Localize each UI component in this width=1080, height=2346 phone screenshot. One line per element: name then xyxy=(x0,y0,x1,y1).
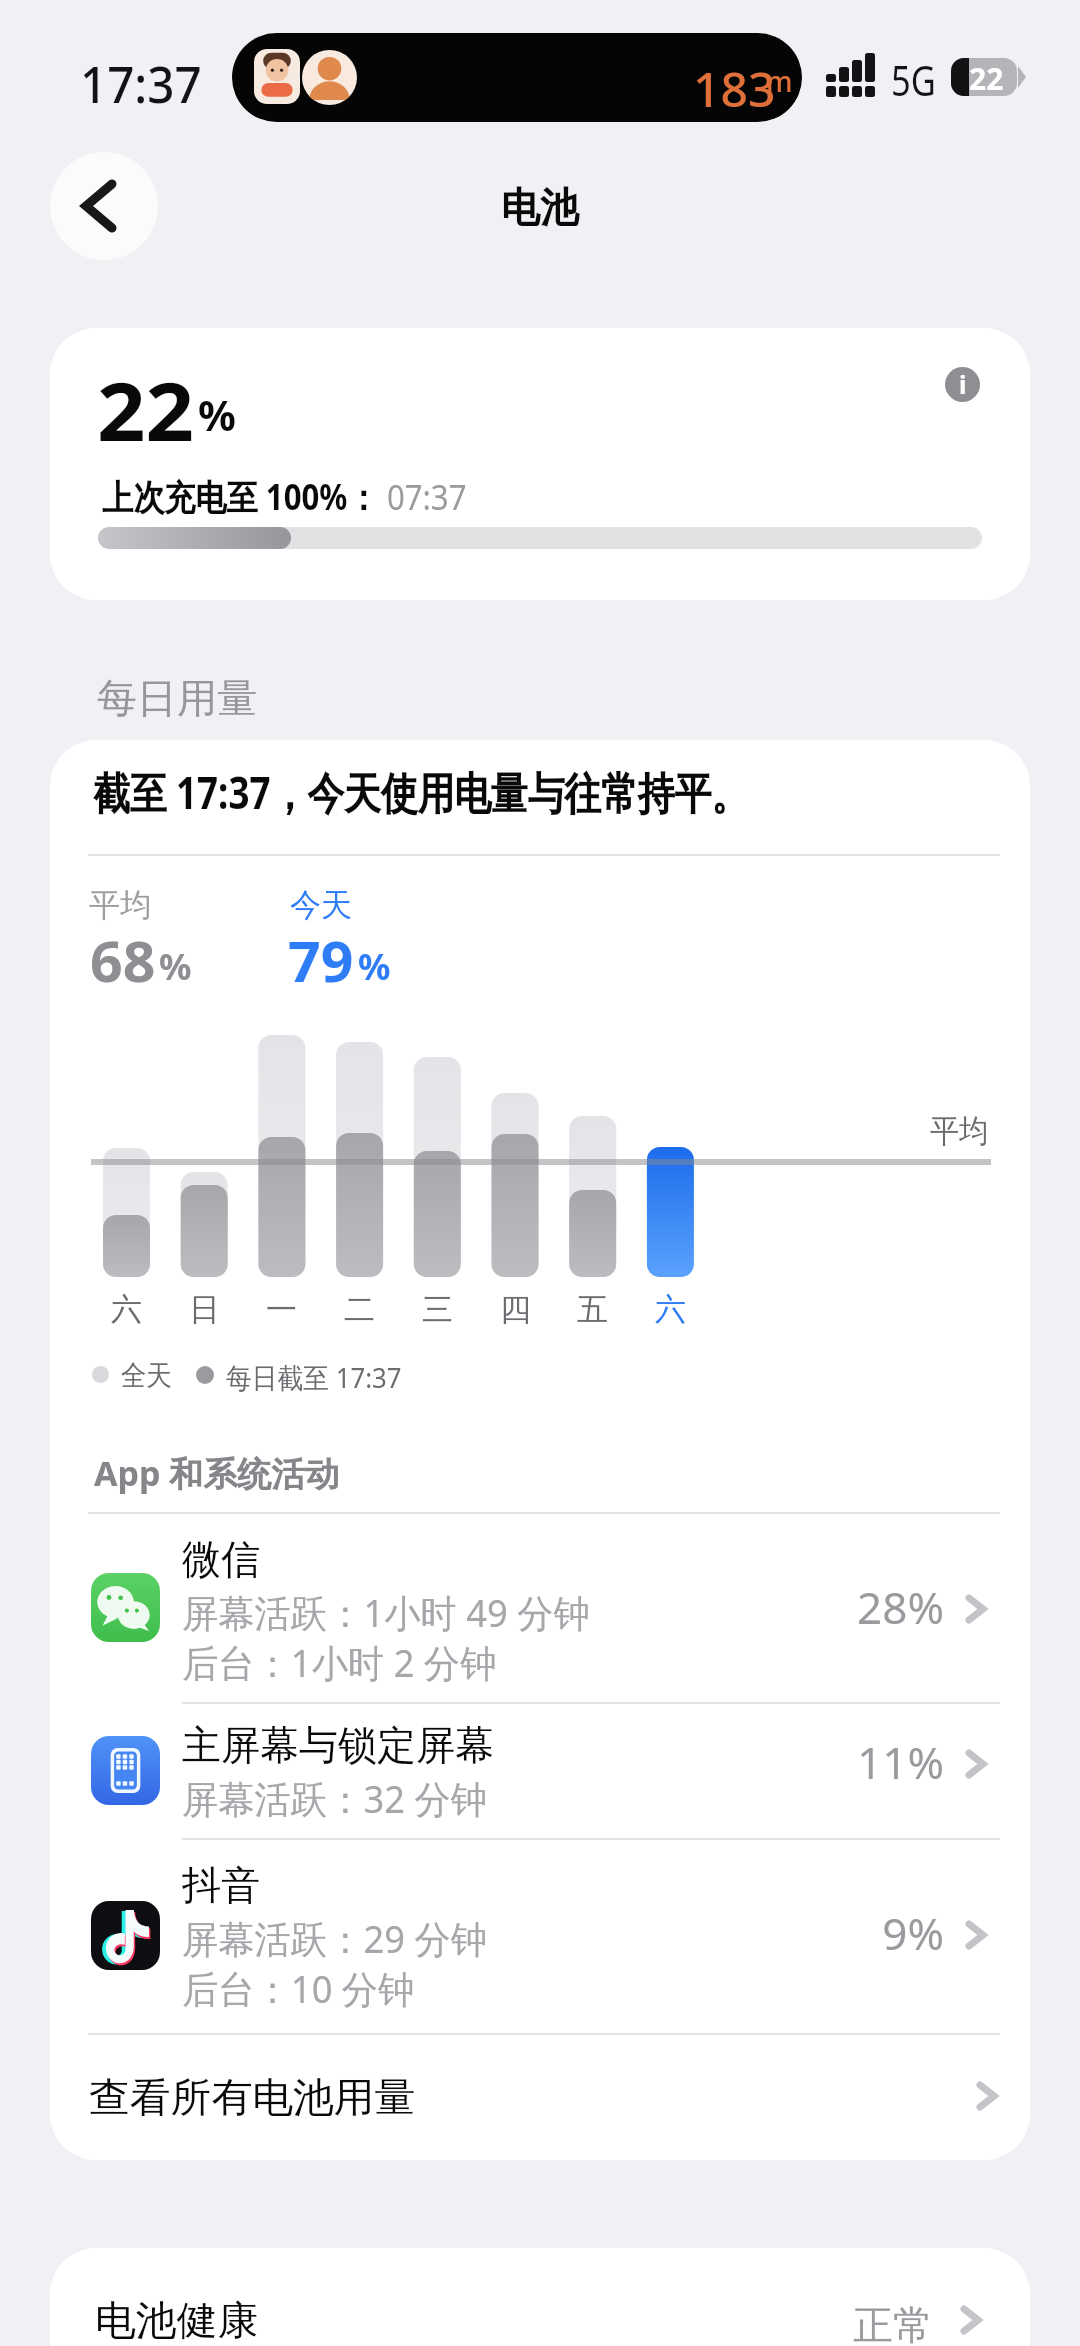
staticText: 日 xyxy=(189,1290,220,1329)
staticText: 查看所有电池用量 xyxy=(89,2072,415,2122)
staticText: 平均 xyxy=(930,1111,988,1151)
staticText: 28% xyxy=(812,1577,944,1637)
staticText: 电池健康 xyxy=(95,2295,258,2345)
staticText: 三 xyxy=(422,1290,453,1329)
staticText: 抖音 xyxy=(182,1860,260,1910)
staticText: 上次充电至 100%： xyxy=(102,473,379,521)
staticText: 屏幕活跃：32 分钟 xyxy=(182,1772,488,1824)
button[interactable]: 微信 xyxy=(50,1512,1030,1702)
staticText: 四 xyxy=(500,1290,531,1329)
staticText: 二 xyxy=(344,1290,375,1329)
staticText: 微信 xyxy=(182,1534,260,1584)
staticText: 六 xyxy=(111,1290,142,1329)
button[interactable]: Back xyxy=(50,152,158,260)
staticText: % xyxy=(159,942,192,991)
staticText: % xyxy=(198,386,236,443)
staticText: 68 xyxy=(90,922,156,998)
staticText: 截至 17:37，今天使用电量与往常持平。 xyxy=(93,762,748,822)
staticText: App 和系统活动 xyxy=(94,1450,340,1496)
staticText: 六 xyxy=(655,1290,686,1329)
button[interactable]: Info xyxy=(945,367,980,402)
staticText: 5G xyxy=(891,51,936,108)
staticText: 79 xyxy=(288,922,354,998)
staticText: 后台：10 分钟 xyxy=(182,1962,415,2014)
staticText: % xyxy=(358,942,391,991)
staticText: 11% xyxy=(812,1732,944,1792)
staticText: 平均 xyxy=(89,885,151,925)
staticText: 22 xyxy=(97,355,194,464)
staticText: 主屏幕与锁定屏幕 xyxy=(182,1720,494,1770)
staticText: 07:37 xyxy=(379,473,467,521)
staticText: 正常 xyxy=(853,2300,933,2346)
staticText: 17:37 xyxy=(80,50,202,118)
staticText: 22 xyxy=(969,58,1004,96)
button[interactable]: 主屏幕与锁定屏幕 xyxy=(50,1702,1030,1838)
staticText: 屏幕活跃：1小时 49 分钟 xyxy=(182,1586,590,1638)
staticText: 五 xyxy=(577,1290,608,1329)
staticText: 全天 xyxy=(121,1358,172,1393)
staticText: 9% xyxy=(812,1903,944,1963)
staticText: 今天 xyxy=(290,885,352,925)
staticText: 183 xyxy=(693,56,776,121)
staticText: 屏幕活跃：29 分钟 xyxy=(182,1912,488,1964)
button[interactable]: 查看所有电池用量 xyxy=(50,2033,1030,2160)
button[interactable]: 抖音 xyxy=(50,1838,1030,2033)
staticText: 后台：1小时 2 分钟 xyxy=(182,1636,497,1688)
staticText: 每日用量 xyxy=(97,673,257,723)
button[interactable]: 电池健康 xyxy=(50,2248,1030,2346)
staticText: i xyxy=(959,367,967,401)
staticText: 电池 xyxy=(501,182,579,232)
staticText: 一 xyxy=(266,1290,297,1329)
staticText: 每日截至 17:37 xyxy=(226,1358,402,1396)
staticText: m xyxy=(766,62,793,100)
